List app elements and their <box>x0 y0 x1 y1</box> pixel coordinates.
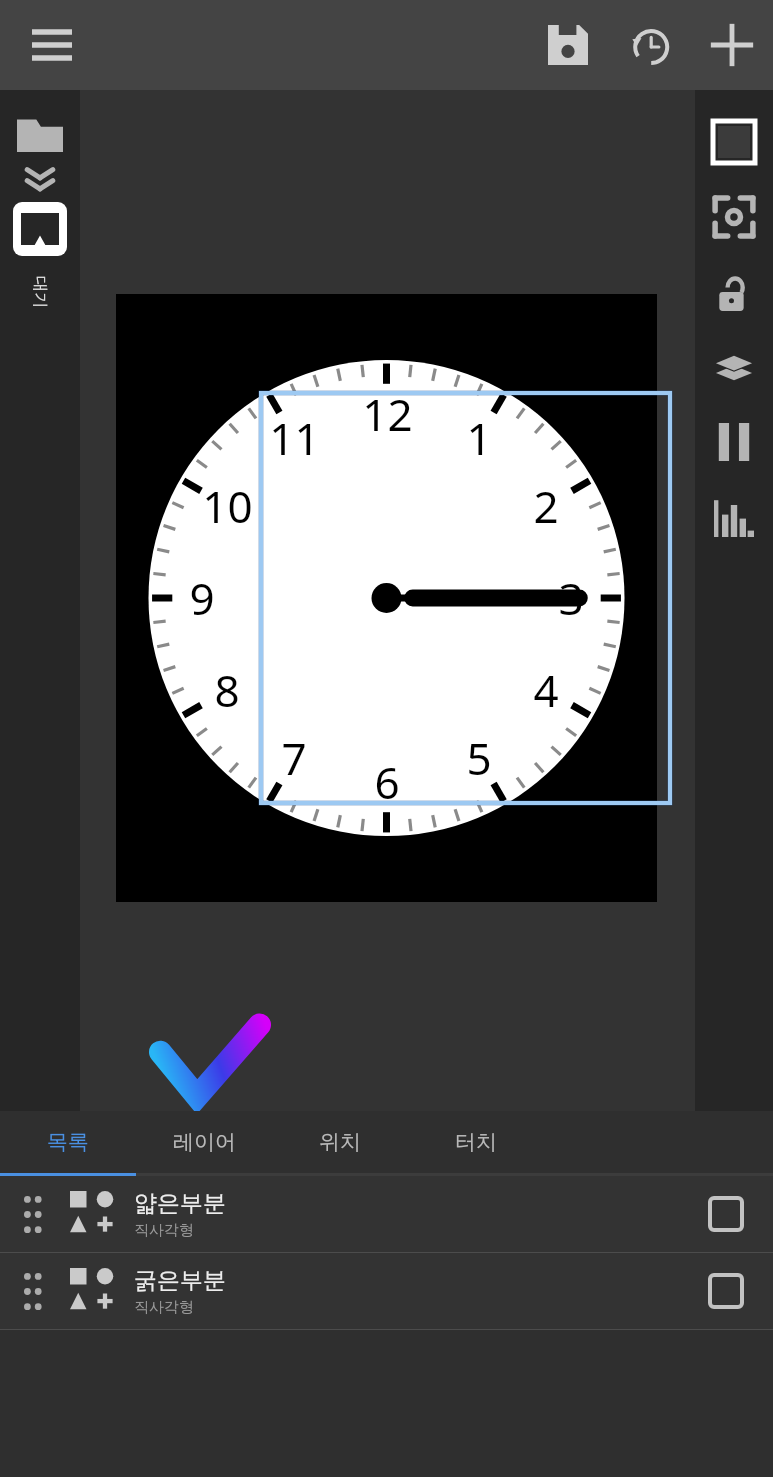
staticText: 직사각형 <box>134 1221 194 1240</box>
staticText: 5 <box>466 728 492 788</box>
staticText: 7 <box>281 728 307 788</box>
staticText: 굵은부분 <box>134 1266 226 1295</box>
button[interactable]: Watch face canvas <box>80 90 695 1111</box>
button[interactable]: Menu <box>20 13 84 77</box>
staticText: 목록 <box>47 1129 89 1155</box>
button[interactable]: Layers <box>695 329 773 404</box>
staticText: 2 <box>533 476 559 536</box>
staticText: 11 <box>269 408 320 468</box>
staticText: 1 <box>466 408 492 468</box>
button[interactable]: Expand <box>15 160 65 198</box>
staticText: 10 <box>202 476 253 536</box>
staticText: 대기 <box>30 276 50 308</box>
button[interactable]: Toggle layer <box>695 1183 757 1245</box>
button[interactable]: Chart <box>695 479 773 554</box>
staticText: 12 <box>362 384 413 444</box>
staticText: 6 <box>374 752 400 812</box>
staticText: 위치 <box>319 1129 361 1155</box>
button[interactable]: Folder <box>9 108 71 160</box>
button[interactable]: 터치 <box>408 1111 544 1173</box>
staticText: 8 <box>214 660 240 720</box>
staticText: 직사각형 <box>134 1298 194 1317</box>
button[interactable]: Toggle layer <box>695 1260 757 1322</box>
button[interactable]: Frame <box>695 104 773 179</box>
button[interactable]: 레이어 <box>136 1111 272 1173</box>
staticText: 9 <box>189 568 215 628</box>
button[interactable]: 얇은부분 <box>0 1176 773 1252</box>
button[interactable]: Add <box>703 16 761 74</box>
staticText: 레이어 <box>173 1129 236 1155</box>
button[interactable]: 굵은부분 <box>0 1253 773 1329</box>
button[interactable]: Pause <box>695 404 773 479</box>
staticText: 4 <box>533 660 559 720</box>
staticText: 터치 <box>455 1129 497 1155</box>
button[interactable]: Focus <box>695 179 773 254</box>
staticText: 얇은부분 <box>134 1189 226 1218</box>
button[interactable]: History <box>621 16 679 74</box>
button[interactable]: 목록 <box>0 1111 136 1173</box>
button[interactable]: Save <box>539 16 597 74</box>
staticText: 3 <box>558 568 584 628</box>
button[interactable]: 위치 <box>272 1111 408 1173</box>
button[interactable]: Artboard <box>13 202 67 256</box>
button[interactable]: Unlock <box>695 254 773 329</box>
